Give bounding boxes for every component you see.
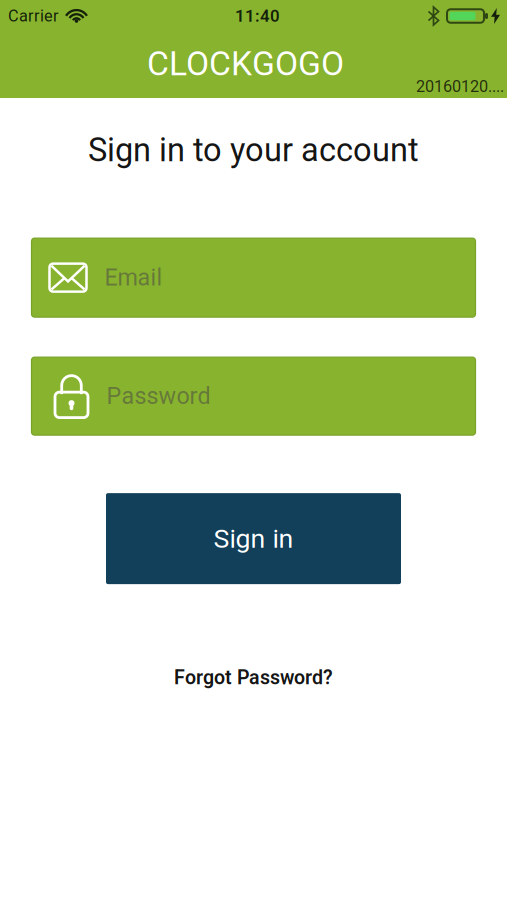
staticText: Carrier xyxy=(8,6,59,26)
staticText: Forgot Password? xyxy=(174,666,333,689)
staticText: Sign in to your account xyxy=(88,131,419,169)
staticText: Sign in xyxy=(213,523,293,554)
button[interactable]: Password xyxy=(31,357,475,435)
staticText: 11:40 xyxy=(235,6,280,26)
staticText: Email xyxy=(104,264,162,291)
button[interactable]: Email xyxy=(31,238,475,317)
staticText: Password xyxy=(106,382,210,410)
staticText: 20160120.... xyxy=(416,77,504,96)
button[interactable]: Forgot Password? xyxy=(174,666,333,689)
button[interactable]: Sign in xyxy=(106,493,401,584)
staticText: CLOCKGOGO xyxy=(147,44,344,83)
